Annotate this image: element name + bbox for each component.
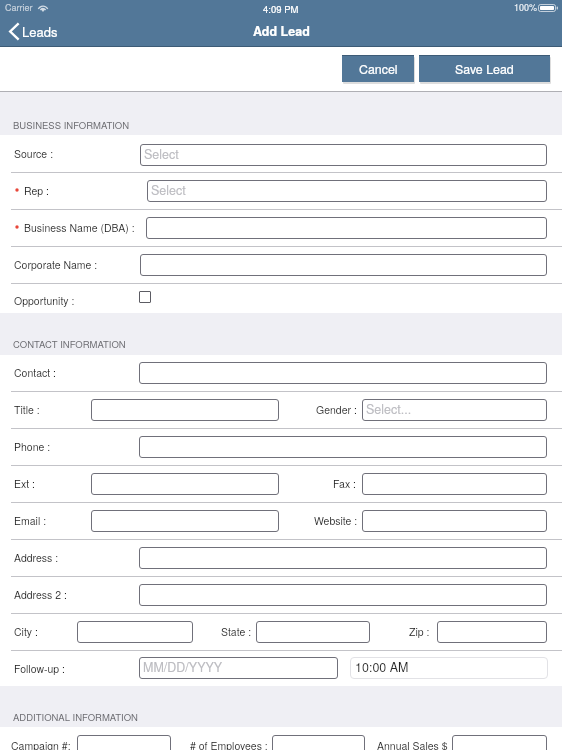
- staticText: Address 2 :: [14, 587, 67, 602]
- staticText: Select: [144, 145, 179, 163]
- button[interactable]: [139, 436, 547, 458]
- staticText: MM/DD/YYYY: [143, 658, 223, 676]
- button[interactable]: Cancel: [342, 55, 414, 82]
- staticText: Follow-up :: [14, 661, 66, 676]
- staticText: Leads: [22, 22, 58, 41]
- staticText: # of Employees :: [190, 738, 268, 750]
- button[interactable]: [437, 621, 547, 643]
- staticText: Corporate Name :: [14, 257, 98, 272]
- staticText: Business Name (DBA) :: [24, 220, 135, 235]
- button[interactable]: [77, 735, 171, 750]
- staticText: Add Lead: [253, 22, 310, 40]
- staticText: 4:09 PM: [263, 2, 299, 16]
- staticText: Select...: [366, 400, 412, 418]
- staticText: 10:00 AM: [355, 658, 409, 676]
- staticText: Address :: [14, 550, 59, 565]
- staticText: CONTACT INFORMATION: [13, 337, 126, 351]
- button[interactable]: MM/DD/YYYY: [139, 657, 338, 679]
- button[interactable]: [139, 362, 547, 384]
- staticText: Source :: [14, 146, 54, 161]
- button[interactable]: Select: [147, 180, 547, 202]
- staticText: 100%: [514, 1, 538, 14]
- staticText: ADDITIONAL INFORMATION: [13, 710, 138, 724]
- button[interactable]: [452, 735, 547, 750]
- staticText: Cancel: [359, 60, 398, 78]
- button[interactable]: Leads: [9, 22, 58, 41]
- staticText: Ext :: [14, 476, 36, 491]
- button[interactable]: [139, 584, 547, 606]
- staticText: Carrier: [5, 1, 33, 14]
- button[interactable]: [146, 217, 547, 239]
- button[interactable]: [362, 510, 547, 532]
- button[interactable]: [91, 510, 279, 532]
- staticText: Rep :: [24, 183, 49, 198]
- staticText: City :: [14, 624, 38, 639]
- staticText: Title :: [14, 402, 40, 417]
- staticText: Website :: [314, 513, 358, 528]
- button[interactable]: [256, 621, 370, 643]
- staticText: Phone :: [14, 439, 51, 454]
- staticText: Campaign #:: [11, 738, 71, 750]
- staticText: Gender :: [316, 402, 357, 417]
- button[interactable]: Opportunity checkbox: [139, 291, 151, 303]
- button[interactable]: [140, 254, 547, 276]
- button[interactable]: [139, 547, 547, 569]
- staticText: BUSINESS INFORMATION: [13, 118, 130, 132]
- staticText: Fax :: [333, 476, 356, 491]
- button[interactable]: 10:00 AM: [350, 657, 548, 679]
- staticText: Save Lead: [455, 60, 514, 78]
- button[interactable]: [272, 735, 365, 750]
- button[interactable]: Select...: [362, 399, 547, 421]
- button[interactable]: [362, 473, 547, 495]
- button[interactable]: Save Lead: [419, 55, 550, 82]
- staticText: Select: [151, 181, 186, 199]
- staticText: Zip :: [409, 624, 430, 639]
- button[interactable]: [77, 621, 193, 643]
- staticText: Annual Sales $: [377, 738, 448, 750]
- staticText: State :: [221, 624, 252, 639]
- staticText: Contact :: [14, 365, 57, 380]
- staticText: Email :: [14, 513, 47, 528]
- staticText: Opportunity :: [14, 293, 75, 308]
- button[interactable]: [91, 473, 279, 495]
- button[interactable]: Select: [140, 144, 547, 166]
- button[interactable]: [91, 399, 279, 421]
